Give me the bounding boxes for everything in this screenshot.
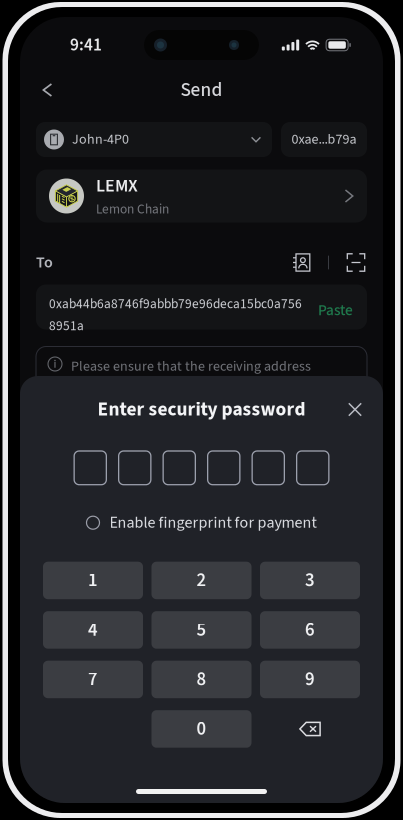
staticText: Paste (318, 299, 353, 321)
staticText: 0xae...b79a (291, 129, 356, 149)
staticText: 9 (305, 666, 315, 693)
button[interactable]: 7 (43, 661, 143, 698)
staticText: 3 (305, 567, 315, 594)
button[interactable]: 4 (43, 611, 143, 649)
button[interactable]: 5 (151, 611, 251, 649)
staticText: 7 (88, 666, 98, 693)
staticText: 6 (305, 617, 315, 643)
staticText: Send (180, 76, 222, 104)
staticText: 9:41 (70, 33, 102, 57)
staticText: 4 (88, 617, 98, 643)
staticText: i (53, 355, 56, 373)
staticText: 5 (196, 617, 206, 643)
staticText: To (36, 251, 53, 274)
button[interactable]: Delete (260, 710, 360, 748)
button[interactable]: Scan QR code (345, 249, 367, 275)
button[interactable]: 6 (260, 611, 360, 649)
button[interactable]: Paste (318, 284, 353, 321)
staticText: 2 (196, 567, 206, 594)
button[interactable]: Close (340, 394, 370, 424)
button[interactable]: 0 (151, 710, 251, 748)
staticText: Enter security password (97, 396, 305, 423)
staticText: Lemon Chain (96, 200, 169, 219)
button[interactable]: 8 (151, 661, 251, 698)
button[interactable]: Enable fingerprint for payment (86, 512, 316, 534)
button[interactable]: Contacts (290, 249, 313, 275)
staticText: LEMX (96, 173, 138, 199)
button[interactable]: LEMX (36, 169, 367, 222)
staticText: Enable fingerprint for payment (109, 511, 316, 534)
staticText: Please ensure that the receiving address… (71, 356, 311, 399)
staticText: 1 (88, 567, 98, 594)
button[interactable]: Back (27, 67, 67, 107)
button[interactable]: 3 (260, 562, 360, 599)
button[interactable]: 2 (151, 562, 251, 599)
button[interactable]: 1 (43, 562, 143, 599)
staticText: John-4P0 (72, 129, 129, 149)
staticText: 0xab44b6a8746f9abbb79e96deca15bc0a756895… (49, 294, 302, 335)
button[interactable]: John-4P0 (36, 122, 272, 157)
button[interactable]: 0xae...b79a (281, 122, 367, 157)
staticText: 8 (196, 666, 206, 693)
staticText: 0 (196, 716, 206, 742)
button[interactable]: 9 (260, 661, 360, 698)
